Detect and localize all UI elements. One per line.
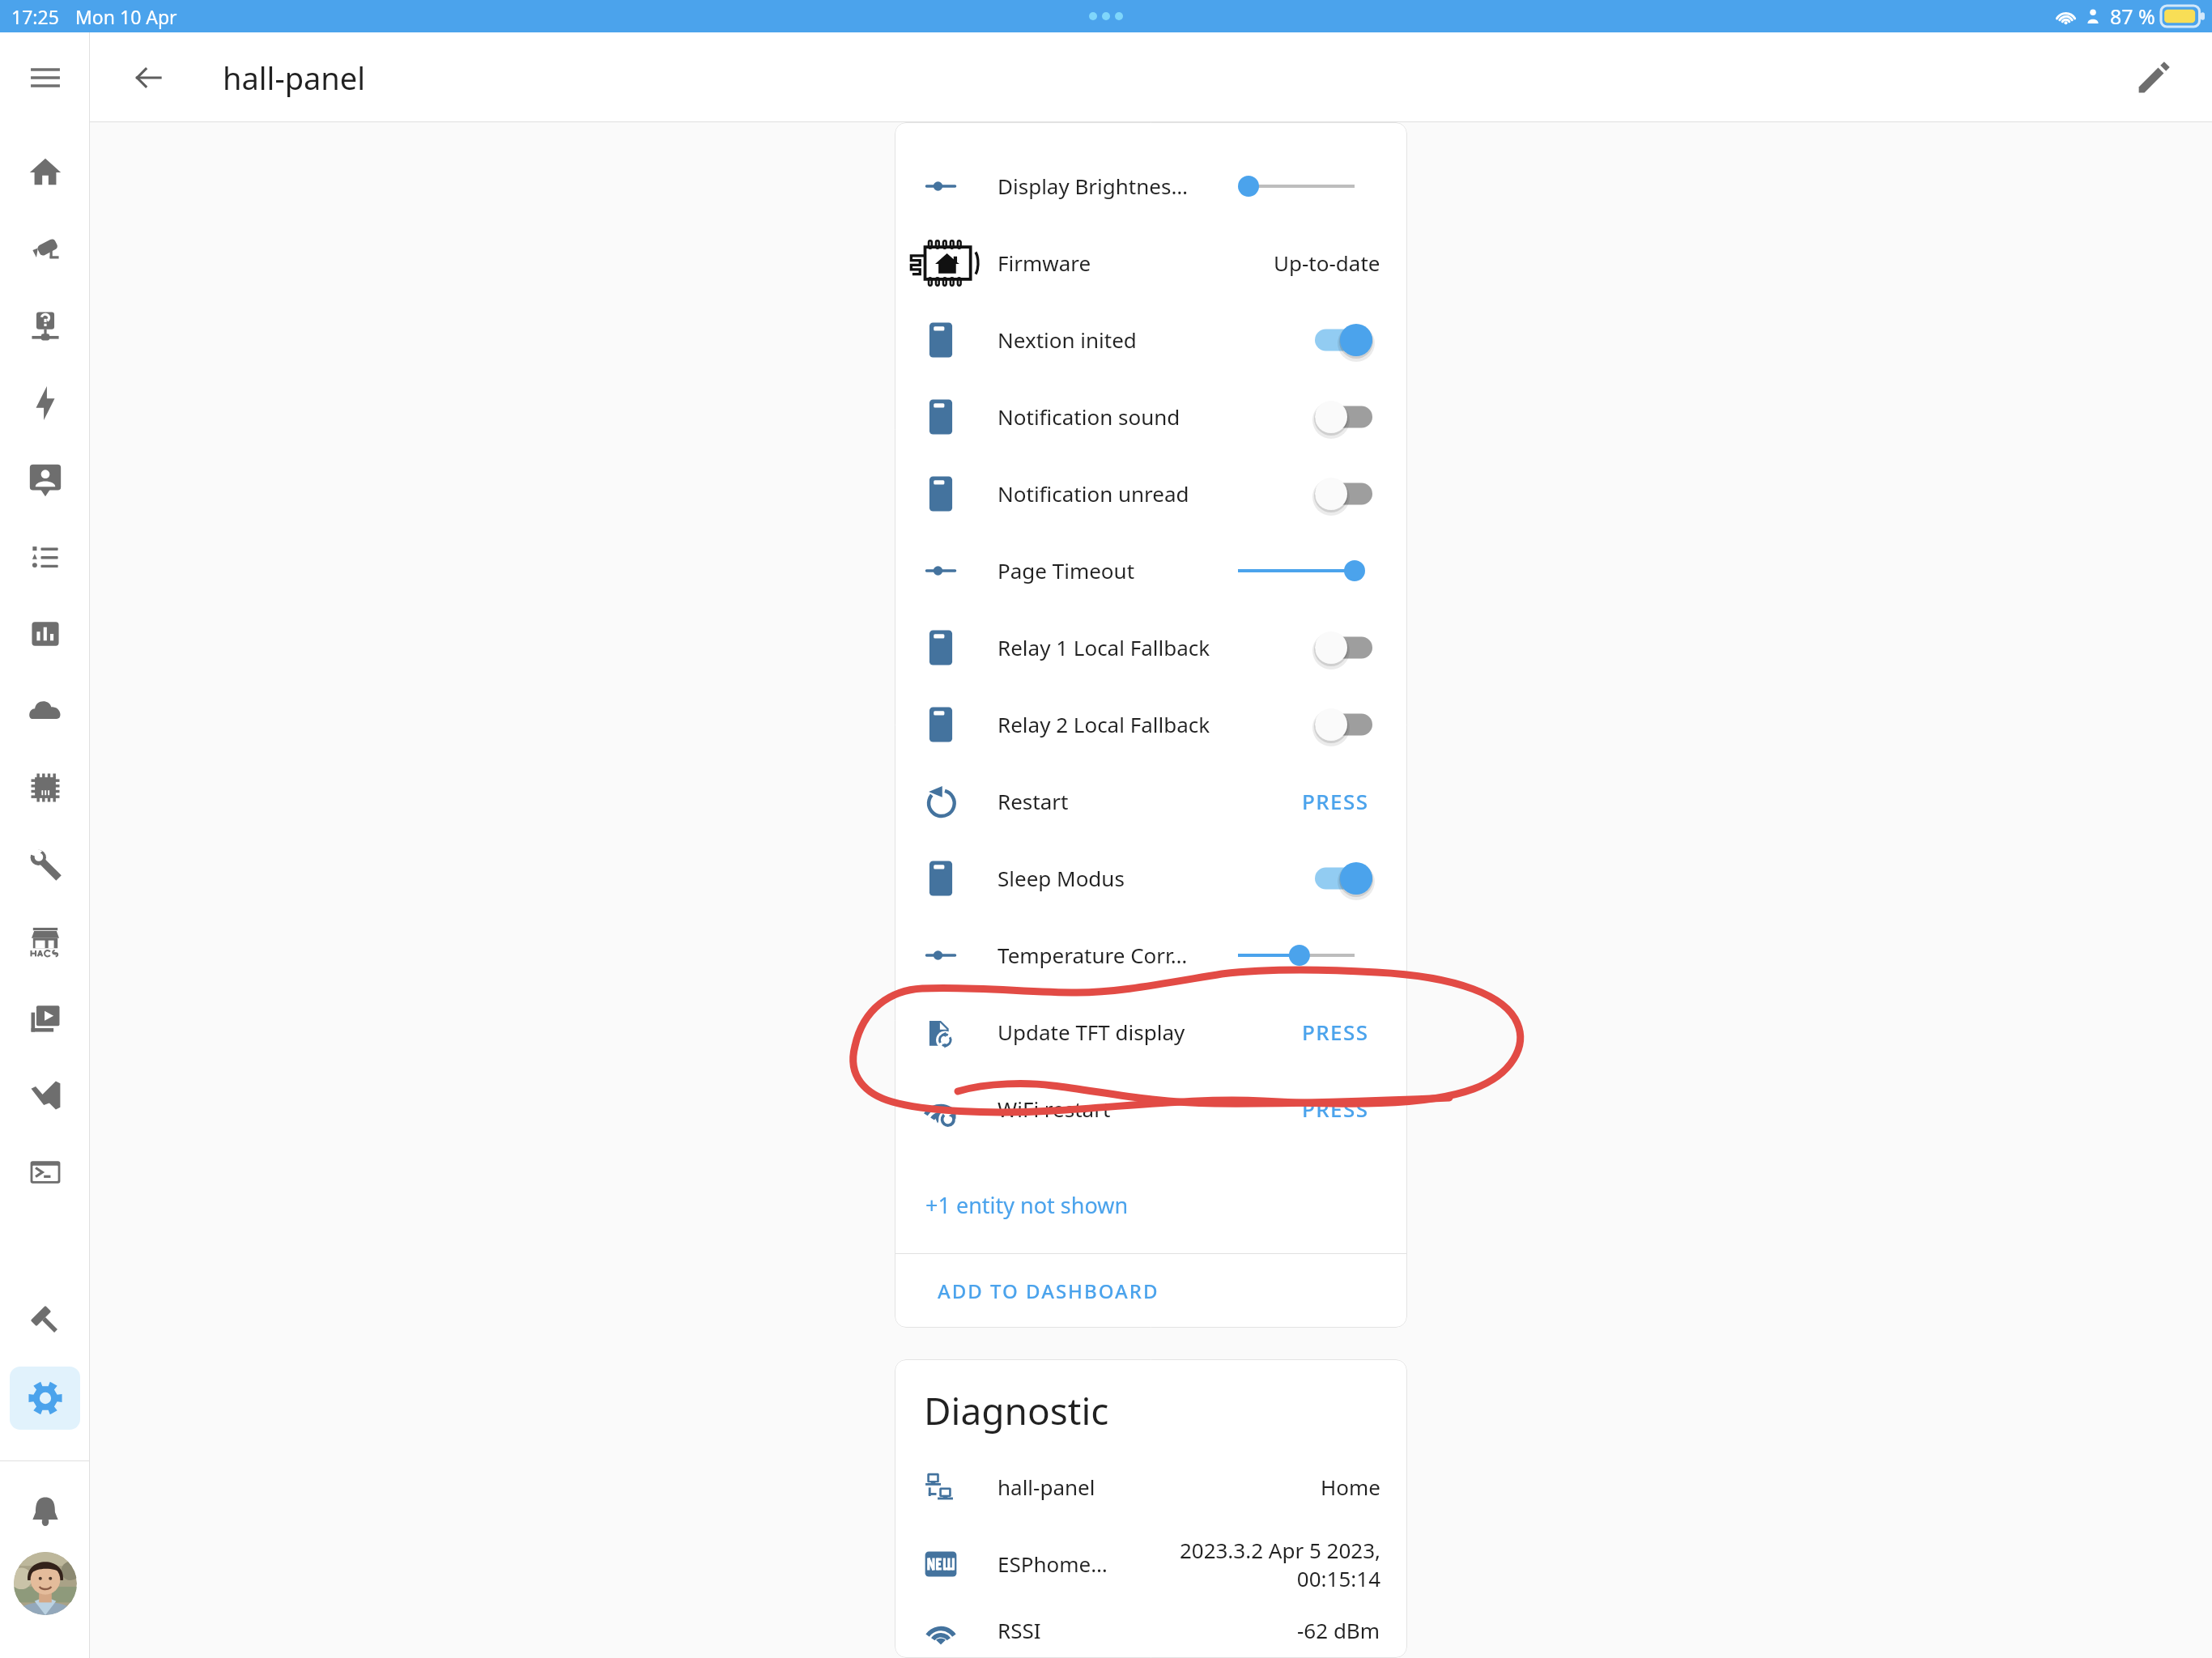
button[interactable]: ADD TO DASHBOARD: [895, 1254, 1407, 1328]
button[interactable]: Slider: [1238, 933, 1380, 978]
button[interactable]: History: [0, 595, 90, 672]
button[interactable]: Unknown: [0, 287, 90, 364]
button[interactable]: Relay 2 Local Fallback: [895, 686, 1407, 763]
staticText: Display Brightnes…: [998, 172, 1188, 200]
button[interactable]: Toggle on: [1315, 856, 1380, 901]
button[interactable]: Sleep Modus: [895, 840, 1407, 916]
button[interactable]: Cameras: [0, 210, 90, 287]
button[interactable]: Tools: [0, 826, 90, 903]
staticText: Update TFT display: [998, 1018, 1185, 1046]
staticText: Page Timeout: [998, 556, 1135, 585]
staticText: -62 dBm: [1297, 1616, 1380, 1644]
staticText: Firmware: [998, 249, 1091, 277]
button[interactable]: Slider: [1238, 164, 1380, 209]
button[interactable]: Media: [0, 980, 90, 1056]
button[interactable]: WiFi restart: [895, 1070, 1407, 1147]
staticText: PRESS: [1302, 1095, 1369, 1123]
button[interactable]: Home: [0, 134, 90, 210]
staticText: Sleep Modus: [998, 864, 1125, 892]
button[interactable]: Toggle off: [1315, 471, 1380, 517]
button[interactable]: Temperature Corr…: [895, 916, 1407, 993]
button[interactable]: ESPhome…: [895, 1525, 1407, 1602]
button[interactable]: ESPHome: [0, 749, 90, 826]
staticText: Mon 10 Apr: [75, 4, 177, 29]
staticText: WiFi restart: [998, 1095, 1111, 1123]
button[interactable]: Page Timeout: [895, 532, 1407, 609]
button[interactable]: Map: [0, 441, 90, 518]
button[interactable]: Relay 1 Local Fallback: [895, 609, 1407, 686]
staticText: Temperature Corr…: [998, 941, 1188, 969]
button[interactable]: HACS: [0, 903, 90, 980]
staticText: ESPhome…: [998, 1550, 1108, 1578]
button[interactable]: Update TFT display: [895, 993, 1407, 1070]
staticText: Relay 2 Local Fallback: [998, 710, 1210, 738]
button[interactable]: PRESS: [1291, 1011, 1380, 1052]
button[interactable]: Settings: [0, 1358, 90, 1437]
staticText: +1 entity not shown: [925, 1190, 1129, 1220]
staticText: 87 %: [2110, 2, 2155, 30]
button[interactable]: Studio Code Server: [0, 1056, 90, 1133]
button[interactable]: hall-panel: [895, 1448, 1407, 1525]
button[interactable]: Restart: [895, 763, 1407, 840]
button[interactable]: Edit: [2113, 37, 2194, 118]
button[interactable]: PRESS: [1291, 1088, 1380, 1129]
button[interactable]: Logbook: [0, 518, 90, 595]
button[interactable]: Cloud: [0, 672, 90, 749]
staticText: RSSI: [998, 1616, 1041, 1644]
staticText: 2023.3.2 Apr 5 2023, 00:15:14: [1146, 1536, 1380, 1592]
button[interactable]: Back: [109, 39, 187, 117]
staticText: 17:25: [11, 4, 59, 29]
button[interactable]: Notifications: [0, 1473, 90, 1550]
button[interactable]: Energy: [0, 364, 90, 441]
button[interactable]: Notification sound: [895, 378, 1407, 455]
button[interactable]: Toggle off: [1315, 394, 1380, 440]
staticText: Relay 1 Local Fallback: [998, 633, 1210, 661]
button[interactable]: Firmware: [895, 224, 1407, 301]
button[interactable]: Display Brightnes…: [895, 147, 1407, 224]
button[interactable]: Menu: [0, 32, 90, 122]
button[interactable]: User profile: [0, 1550, 90, 1617]
staticText: hall-panel: [223, 57, 366, 99]
button[interactable]: Toggle on: [1315, 317, 1380, 363]
staticText: Diagnostic: [924, 1385, 1109, 1436]
button[interactable]: PRESS: [1291, 780, 1380, 822]
staticText: Nextion inited: [998, 325, 1137, 354]
staticText: Up-to-date: [1274, 249, 1380, 277]
staticText: ADD TO DASHBOARD: [938, 1278, 1159, 1304]
button[interactable]: Terminal: [0, 1133, 90, 1210]
button[interactable]: Toggle off: [1315, 702, 1380, 747]
button[interactable]: +1 entity not shown: [895, 1147, 1407, 1253]
button[interactable]: Toggle off: [1315, 625, 1380, 670]
button[interactable]: Developer tools: [0, 1282, 90, 1358]
staticText: Restart: [998, 787, 1069, 815]
staticText: Home: [1321, 1473, 1380, 1501]
staticText: PRESS: [1302, 1018, 1369, 1046]
button[interactable]: Slider: [1238, 548, 1380, 593]
button[interactable]: Nextion inited: [895, 301, 1407, 378]
button[interactable]: RSSI: [895, 1602, 1407, 1658]
staticText: Notification sound: [998, 402, 1180, 431]
button[interactable]: Notification unread: [895, 455, 1407, 532]
staticText: hall-panel: [998, 1473, 1095, 1501]
staticText: PRESS: [1302, 787, 1369, 815]
staticText: Notification unread: [998, 479, 1189, 508]
